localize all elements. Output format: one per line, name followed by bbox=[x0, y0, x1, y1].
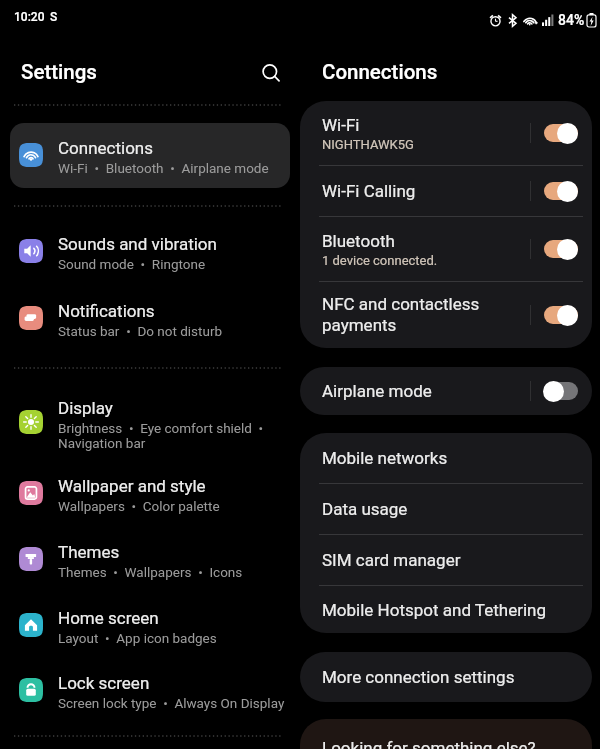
staticText: Navigation bar bbox=[58, 435, 146, 451]
staticText: Sound mode • Ringtone bbox=[58, 256, 206, 272]
button[interactable]: Turn off bbox=[544, 240, 578, 258]
staticText: Lock screen bbox=[58, 673, 150, 693]
staticText: 84% bbox=[558, 12, 585, 28]
staticText: Home screen bbox=[58, 608, 159, 628]
staticText: Themes bbox=[58, 542, 120, 562]
staticText: NIGHTHAWK5G bbox=[322, 137, 414, 152]
button[interactable]: SIM card manager bbox=[300, 535, 592, 585]
button[interactable]: Airplane mode bbox=[300, 367, 592, 415]
staticText: 10:20 bbox=[14, 10, 45, 24]
staticText: Wi-Fi • Bluetooth • Airplane mode bbox=[58, 160, 269, 176]
button[interactable]: Home screen bbox=[0, 608, 300, 647]
staticText: Airplane mode bbox=[322, 381, 432, 401]
staticText: Notifications bbox=[58, 301, 155, 321]
button[interactable]: Wallpaper and style bbox=[0, 476, 300, 515]
staticText: Looking for something else? bbox=[322, 738, 536, 749]
staticText: Layout • App icon badges bbox=[58, 630, 217, 646]
staticText: Sounds and vibration bbox=[58, 234, 217, 254]
staticText: SIM card manager bbox=[322, 550, 461, 570]
button[interactable]: Mobile Hotspot and Tethering bbox=[300, 586, 592, 633]
staticText: Data usage bbox=[322, 499, 408, 519]
button[interactable] bbox=[10, 123, 290, 188]
button[interactable]: Wi-Fi Calling bbox=[300, 166, 592, 216]
button[interactable]: Turn off bbox=[544, 182, 578, 200]
button[interactable]: NFC and contactless payments bbox=[300, 282, 592, 348]
staticText: Display bbox=[58, 398, 113, 418]
button[interactable]: Sounds and vibration bbox=[0, 234, 300, 273]
staticText: Themes • Wallpapers • Icons bbox=[58, 564, 243, 580]
button[interactable]: Turn off bbox=[544, 124, 578, 142]
staticText: Wallpaper and style bbox=[58, 476, 206, 496]
staticText: Wi-Fi Calling bbox=[322, 181, 416, 201]
staticText: Mobile Hotspot and Tethering bbox=[322, 600, 546, 620]
staticText: More connection settings bbox=[322, 667, 515, 687]
staticText: NFC and contactless payments bbox=[322, 294, 480, 335]
button[interactable]: More connection settings bbox=[300, 652, 592, 702]
staticText: Connections bbox=[322, 60, 438, 84]
button[interactable]: Display bbox=[0, 398, 300, 452]
staticText: Screen lock type • Always On Display bbox=[58, 695, 285, 711]
staticText: Wallpapers • Color palette bbox=[58, 498, 220, 514]
button[interactable]: Data usage bbox=[300, 484, 592, 534]
staticText: Mobile networks bbox=[322, 448, 448, 468]
staticText: 1 device connected. bbox=[322, 253, 438, 268]
staticText: S bbox=[50, 10, 58, 24]
button[interactable]: Connections bbox=[0, 138, 300, 177]
button[interactable]: Lock screen bbox=[0, 673, 300, 712]
button[interactable]: Turn off bbox=[544, 306, 578, 324]
button[interactable]: Turn on bbox=[544, 382, 578, 400]
button[interactable]: Bluetooth bbox=[300, 217, 592, 281]
button[interactable]: Wi-Fi bbox=[300, 101, 592, 165]
button[interactable]: Notifications bbox=[0, 301, 300, 340]
staticText: Brightness • Eye comfort shield • bbox=[58, 420, 264, 436]
staticText: Bluetooth bbox=[322, 231, 395, 251]
staticText: Status bar • Do not disturb bbox=[58, 323, 223, 339]
staticText: Connections bbox=[58, 138, 154, 158]
button[interactable]: Looking for something else? bbox=[300, 719, 592, 749]
staticText: Settings bbox=[21, 60, 97, 84]
button[interactable]: Themes bbox=[0, 542, 300, 581]
staticText: Wi-Fi bbox=[322, 115, 360, 135]
button[interactable]: Mobile networks bbox=[300, 433, 592, 483]
button[interactable]: Search bbox=[257, 59, 285, 87]
